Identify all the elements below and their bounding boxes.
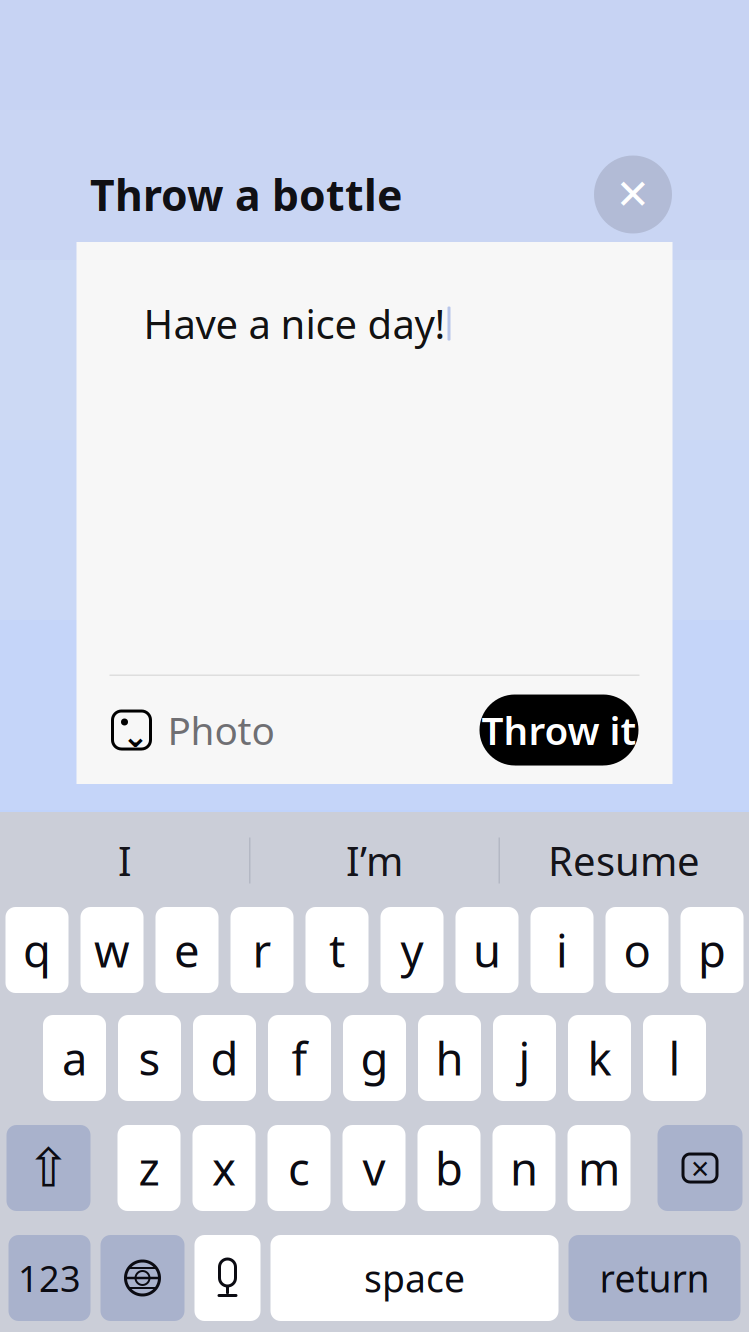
staticText: l [668, 1028, 680, 1088]
button[interactable]: q [5, 907, 68, 993]
button[interactable]: I’m [250, 814, 498, 907]
button[interactable]: Next keyboard [100, 1235, 184, 1321]
staticText: q [23, 920, 51, 980]
staticText: k [587, 1028, 611, 1088]
staticText: z [138, 1138, 159, 1198]
button[interactable]: o [605, 907, 668, 993]
staticText: n [510, 1138, 538, 1198]
button[interactable]: l [643, 1015, 706, 1101]
button[interactable]: a [43, 1015, 106, 1101]
button[interactable]: Dictation [194, 1235, 260, 1321]
button[interactable]: h [418, 1015, 481, 1101]
staticText: j [518, 1028, 530, 1088]
button[interactable]: b [417, 1125, 480, 1211]
button[interactable]: e [155, 907, 218, 993]
staticText: u [473, 920, 501, 980]
staticText: t [329, 920, 345, 980]
button[interactable]: Close [594, 155, 672, 233]
staticText: x [212, 1138, 236, 1198]
button[interactable]: y [380, 907, 443, 993]
staticText: Throw it [481, 704, 636, 756]
staticText: d [210, 1028, 238, 1088]
button[interactable]: r [230, 907, 293, 993]
button[interactable]: return [568, 1235, 740, 1321]
button[interactable]: j [493, 1015, 556, 1101]
button[interactable]: s [118, 1015, 181, 1101]
staticText: return [599, 1253, 709, 1303]
staticText: Have a nice day! [143, 297, 445, 350]
staticText: b [435, 1138, 463, 1198]
button[interactable]: d [193, 1015, 256, 1101]
staticText: Resume [548, 834, 700, 887]
button[interactable]: i [530, 907, 593, 993]
staticText: h [435, 1028, 463, 1088]
staticText: × [691, 1147, 709, 1189]
button[interactable]: space [270, 1235, 558, 1321]
staticText: a [62, 1028, 87, 1088]
staticText: Throw a bottle [90, 166, 402, 223]
staticText: 123 [18, 1254, 81, 1302]
staticText: y [400, 920, 423, 980]
staticText: e [174, 920, 200, 980]
button[interactable]: c [267, 1125, 330, 1211]
button[interactable]: f [268, 1015, 331, 1101]
staticText: c [288, 1138, 310, 1198]
button[interactable]: x [192, 1125, 255, 1211]
button[interactable]: Delete [657, 1125, 742, 1211]
staticText: I’m [346, 834, 403, 887]
staticText: g [360, 1028, 388, 1088]
staticText: f [291, 1028, 307, 1088]
button[interactable]: Throw it [479, 694, 638, 765]
button[interactable]: I [1, 814, 249, 907]
staticText: w [94, 920, 130, 980]
button[interactable]: g [343, 1015, 406, 1101]
button[interactable]: 123 [8, 1235, 90, 1321]
button[interactable]: Shift [6, 1125, 90, 1211]
staticText: Photo [167, 704, 274, 756]
button[interactable]: p [680, 907, 743, 993]
button[interactable]: n [492, 1125, 555, 1211]
button[interactable]: Resume [500, 814, 748, 907]
staticText: o [623, 920, 650, 980]
staticText: m [578, 1138, 620, 1198]
staticText: r [252, 920, 271, 980]
staticText: ✕ [615, 171, 650, 218]
staticText: ⇧ [26, 1138, 71, 1198]
button[interactable]: k [568, 1015, 631, 1101]
button[interactable]: w [80, 907, 143, 993]
staticText: p [698, 920, 726, 980]
staticText: i [556, 920, 568, 980]
staticText: ⌄ [122, 718, 149, 754]
staticText: I [118, 834, 132, 887]
staticText: space [364, 1253, 465, 1303]
button[interactable]: v [342, 1125, 405, 1211]
staticText: s [138, 1028, 160, 1088]
button[interactable]: t [305, 907, 368, 993]
button[interactable]: z [117, 1125, 180, 1211]
button[interactable]: u [455, 907, 518, 993]
button[interactable]: m [567, 1125, 630, 1211]
button[interactable]: ⌄ [76, 676, 284, 784]
staticText: v [362, 1138, 385, 1198]
